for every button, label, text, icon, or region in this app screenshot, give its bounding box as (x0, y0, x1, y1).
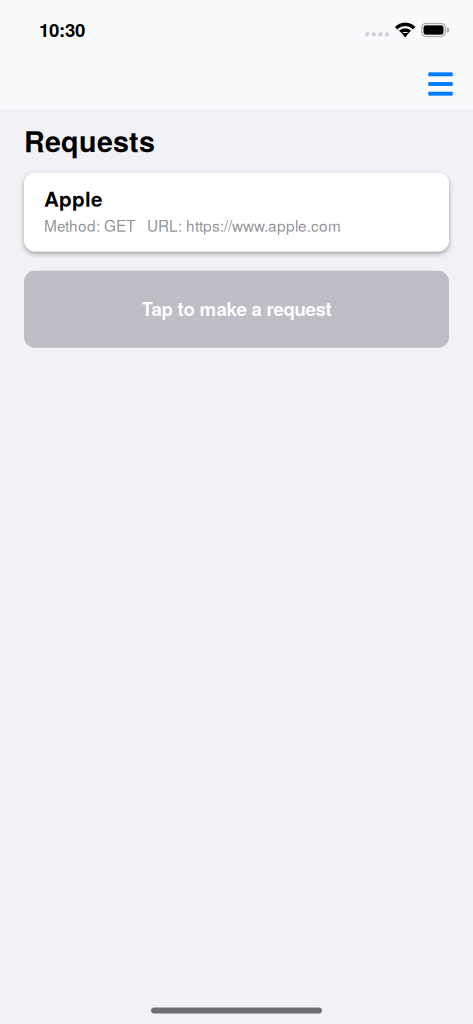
staticText: 10:30 (39, 16, 85, 43)
button[interactable]: Apple (24, 173, 449, 252)
staticText: Method: GET URL: https://www.apple.com (44, 214, 341, 236)
staticText: Apple (44, 184, 102, 213)
button[interactable]: Tap to make a request (24, 271, 449, 348)
staticText: Tap to make a request (141, 295, 331, 322)
button[interactable]: Menu (418, 61, 463, 100)
staticText: Requests (24, 120, 155, 161)
